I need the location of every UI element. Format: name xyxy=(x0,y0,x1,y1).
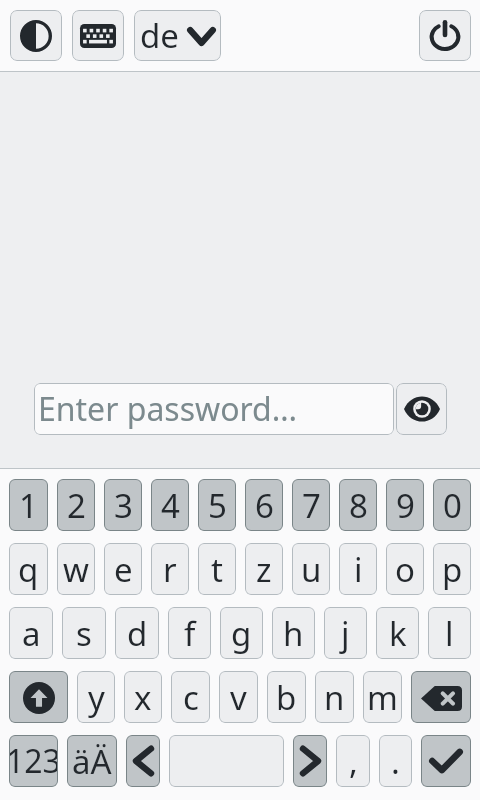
button[interactable]: o xyxy=(386,543,424,595)
staticText: 9 xyxy=(396,483,415,528)
button[interactable]: de xyxy=(134,10,221,61)
staticText: y xyxy=(88,675,105,720)
staticText: Enter password… xyxy=(38,387,298,431)
staticText: t xyxy=(211,547,223,592)
staticText: d xyxy=(127,611,148,656)
staticText: z xyxy=(256,547,272,592)
button[interactable]: 6 xyxy=(245,479,283,531)
staticText: 0 xyxy=(443,483,462,528)
staticText: p xyxy=(442,547,463,592)
button[interactable]: h xyxy=(272,607,315,659)
button[interactable]: m xyxy=(363,671,402,723)
staticText: q xyxy=(18,547,39,592)
staticText: m xyxy=(367,675,398,720)
button[interactable]: 123 xyxy=(9,735,58,787)
staticText: h xyxy=(283,611,304,656)
staticText: , xyxy=(349,739,358,784)
staticText: 123 xyxy=(9,739,58,783)
button[interactable]: r xyxy=(151,543,189,595)
button[interactable]: 7 xyxy=(292,479,330,531)
button[interactable]: Show password xyxy=(396,383,447,435)
staticText: a xyxy=(22,611,41,656)
button[interactable]: k xyxy=(376,607,419,659)
staticText: l xyxy=(445,611,454,656)
button[interactable]: q xyxy=(9,543,48,595)
staticText: u xyxy=(301,547,322,592)
button[interactable]: äÄ xyxy=(67,735,117,787)
button[interactable] xyxy=(9,671,68,723)
button[interactable]: y xyxy=(77,671,115,723)
button[interactable]: . xyxy=(379,735,412,787)
staticText: s xyxy=(76,611,92,656)
staticText: f xyxy=(184,611,196,656)
staticText: 6 xyxy=(255,483,274,528)
staticText: . xyxy=(391,739,400,784)
button[interactable]: 1 xyxy=(9,479,48,531)
staticText: k xyxy=(389,611,407,656)
button[interactable] xyxy=(169,735,284,787)
staticText: äÄ xyxy=(72,739,112,784)
button[interactable]: 3 xyxy=(104,479,142,531)
button[interactable]: l xyxy=(428,607,471,659)
staticText: e xyxy=(114,547,133,592)
staticText: o xyxy=(395,547,415,592)
button[interactable]: 9 xyxy=(386,479,424,531)
button[interactable]: Toggle contrast xyxy=(10,10,62,61)
button[interactable]: 8 xyxy=(339,479,377,531)
staticText: 3 xyxy=(114,483,133,528)
button[interactable]: g xyxy=(220,607,263,659)
button[interactable]: d xyxy=(115,607,159,659)
button[interactable]: Power xyxy=(419,10,471,61)
button[interactable]: 4 xyxy=(151,479,189,531)
staticText: w xyxy=(63,547,89,592)
button[interactable]: x xyxy=(124,671,162,723)
staticText: c xyxy=(183,675,199,720)
button[interactable]: b xyxy=(267,671,306,723)
button[interactable]: v xyxy=(219,671,258,723)
button[interactable]: t xyxy=(198,543,236,595)
staticText: x xyxy=(134,675,152,720)
button[interactable]: 0 xyxy=(433,479,471,531)
button[interactable]: Show keyboard xyxy=(72,10,124,61)
button[interactable]: a xyxy=(9,607,53,659)
button[interactable]: u xyxy=(292,543,330,595)
button[interactable]: j xyxy=(324,607,367,659)
button[interactable]: p xyxy=(433,543,471,595)
staticText: g xyxy=(231,611,252,656)
button[interactable]: s xyxy=(62,607,106,659)
button[interactable]: Enter password… xyxy=(34,383,394,435)
staticText: 2 xyxy=(67,483,86,528)
button[interactable]: i xyxy=(339,543,377,595)
staticText: 8 xyxy=(349,483,368,528)
button[interactable] xyxy=(411,671,471,723)
staticText: 4 xyxy=(161,483,180,528)
button[interactable] xyxy=(126,735,160,787)
staticText: i xyxy=(354,547,363,592)
button[interactable]: z xyxy=(245,543,283,595)
button[interactable]: f xyxy=(168,607,211,659)
button[interactable]: 2 xyxy=(57,479,95,531)
button[interactable]: , xyxy=(336,735,370,787)
button[interactable]: w xyxy=(57,543,95,595)
staticText: v xyxy=(230,675,247,720)
staticText: j xyxy=(341,611,350,656)
staticText: 7 xyxy=(302,483,321,528)
button[interactable] xyxy=(421,735,471,787)
staticText: b xyxy=(276,675,297,720)
staticText: de xyxy=(140,13,179,58)
button[interactable]: c xyxy=(171,671,210,723)
button[interactable]: e xyxy=(104,543,142,595)
button[interactable]: n xyxy=(315,671,354,723)
staticText: r xyxy=(163,547,177,592)
staticText: 5 xyxy=(208,483,227,528)
button[interactable]: 5 xyxy=(198,479,236,531)
button[interactable] xyxy=(293,735,327,787)
staticText: n xyxy=(324,675,345,720)
staticText: 1 xyxy=(19,483,38,528)
